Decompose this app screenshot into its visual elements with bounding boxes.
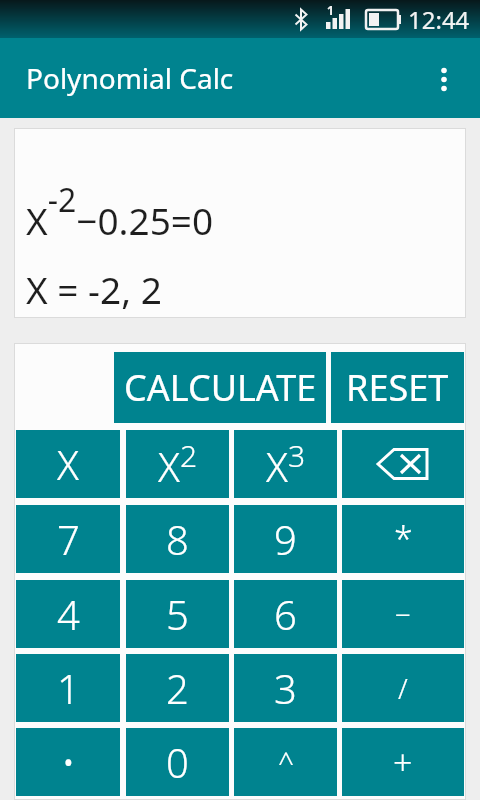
staticText: X3: [266, 435, 306, 493]
button[interactable]: +: [342, 728, 464, 796]
staticText: ^: [278, 743, 294, 781]
button[interactable]: 1: [16, 654, 120, 722]
button[interactable]: 4: [16, 580, 120, 648]
button[interactable]: 7: [16, 505, 120, 573]
button[interactable]: 2: [126, 654, 229, 722]
staticText: X: [57, 437, 79, 491]
staticText: X2: [158, 435, 198, 493]
button[interactable]: ^: [234, 728, 337, 796]
staticText: 5: [166, 587, 189, 641]
staticText: 9: [274, 512, 297, 566]
button[interactable]: [432, 38, 480, 118]
staticText: *: [394, 516, 413, 562]
button[interactable]: RESET: [331, 352, 464, 423]
staticText: 8: [166, 512, 189, 566]
button[interactable]: X: [16, 430, 120, 498]
staticText: −: [395, 595, 411, 633]
button[interactable]: −: [342, 580, 464, 648]
button[interactable]: 8: [126, 505, 229, 573]
staticText: 12:44: [408, 3, 470, 36]
button[interactable]: X2: [126, 430, 229, 498]
staticText: RESET: [346, 363, 449, 412]
staticText: 0: [166, 735, 189, 789]
staticText: 3: [274, 661, 297, 715]
staticText: •: [62, 739, 75, 785]
staticText: 6: [274, 587, 297, 641]
staticText: 1: [57, 661, 80, 715]
button[interactable]: /: [342, 654, 464, 722]
button[interactable]: X3: [234, 430, 337, 498]
button[interactable]: *: [342, 505, 464, 573]
staticText: 2: [166, 661, 189, 715]
button[interactable]: [342, 430, 464, 498]
staticText: X = -2, 2: [26, 264, 162, 314]
button[interactable]: 3: [234, 654, 337, 722]
staticText: 4: [57, 587, 80, 641]
button[interactable]: 6: [234, 580, 337, 648]
staticText: Polynomial Calc: [26, 59, 234, 97]
button[interactable]: 0: [126, 728, 229, 796]
staticText: 1: [327, 2, 334, 18]
button[interactable]: 9: [234, 505, 337, 573]
staticText: 7: [57, 512, 80, 566]
staticText: X-2−0.25=0: [26, 178, 214, 246]
button[interactable]: CALCULATE: [114, 352, 326, 423]
staticText: +: [393, 739, 413, 785]
staticText: /: [398, 669, 408, 707]
button[interactable]: •: [16, 728, 120, 796]
staticText: CALCULATE: [124, 363, 317, 412]
button[interactable]: 5: [126, 580, 229, 648]
